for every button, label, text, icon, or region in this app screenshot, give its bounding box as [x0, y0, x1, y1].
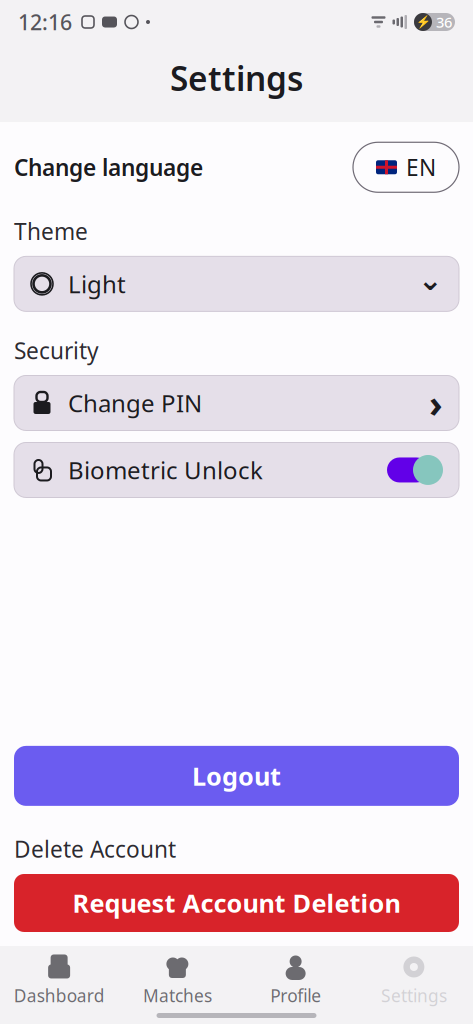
- button[interactable]: Settings: [355, 946, 473, 1007]
- staticText: Logout: [192, 759, 281, 793]
- staticText: Security: [14, 335, 99, 365]
- staticText: Settings: [170, 56, 303, 100]
- staticText: Change language: [14, 152, 203, 182]
- button[interactable]: Matches: [118, 946, 236, 1007]
- button[interactable]: Request Account Deletion: [14, 874, 459, 932]
- staticText: ›: [429, 378, 443, 428]
- button[interactable]: Logout: [14, 746, 459, 806]
- staticText: Change PIN: [68, 387, 202, 419]
- staticText: Biometric Unlock: [68, 454, 263, 486]
- staticText: Delete Account: [14, 834, 176, 864]
- button[interactable]: Biometric Unlock: [14, 430, 459, 497]
- staticText: Profile: [270, 984, 321, 1007]
- staticText: Matches: [143, 984, 212, 1007]
- button[interactable]: EN: [353, 142, 459, 192]
- staticText: 12:16: [18, 8, 72, 36]
- staticText: Dashboard: [14, 984, 105, 1007]
- staticText: ⌄: [418, 263, 443, 296]
- staticText: Theme: [14, 216, 88, 246]
- staticText: Settings: [381, 984, 447, 1007]
- button[interactable]: Change PIN: [14, 375, 459, 430]
- button[interactable]: Light: [14, 256, 459, 311]
- staticText: ⚡: [415, 15, 430, 29]
- staticText: Light: [68, 268, 126, 300]
- staticText: EN: [406, 152, 436, 182]
- button[interactable]: Profile: [236, 946, 355, 1007]
- staticText: Request Account Deletion: [72, 886, 400, 920]
- staticText: 36: [436, 12, 452, 32]
- button[interactable]: Dashboard: [0, 946, 118, 1007]
